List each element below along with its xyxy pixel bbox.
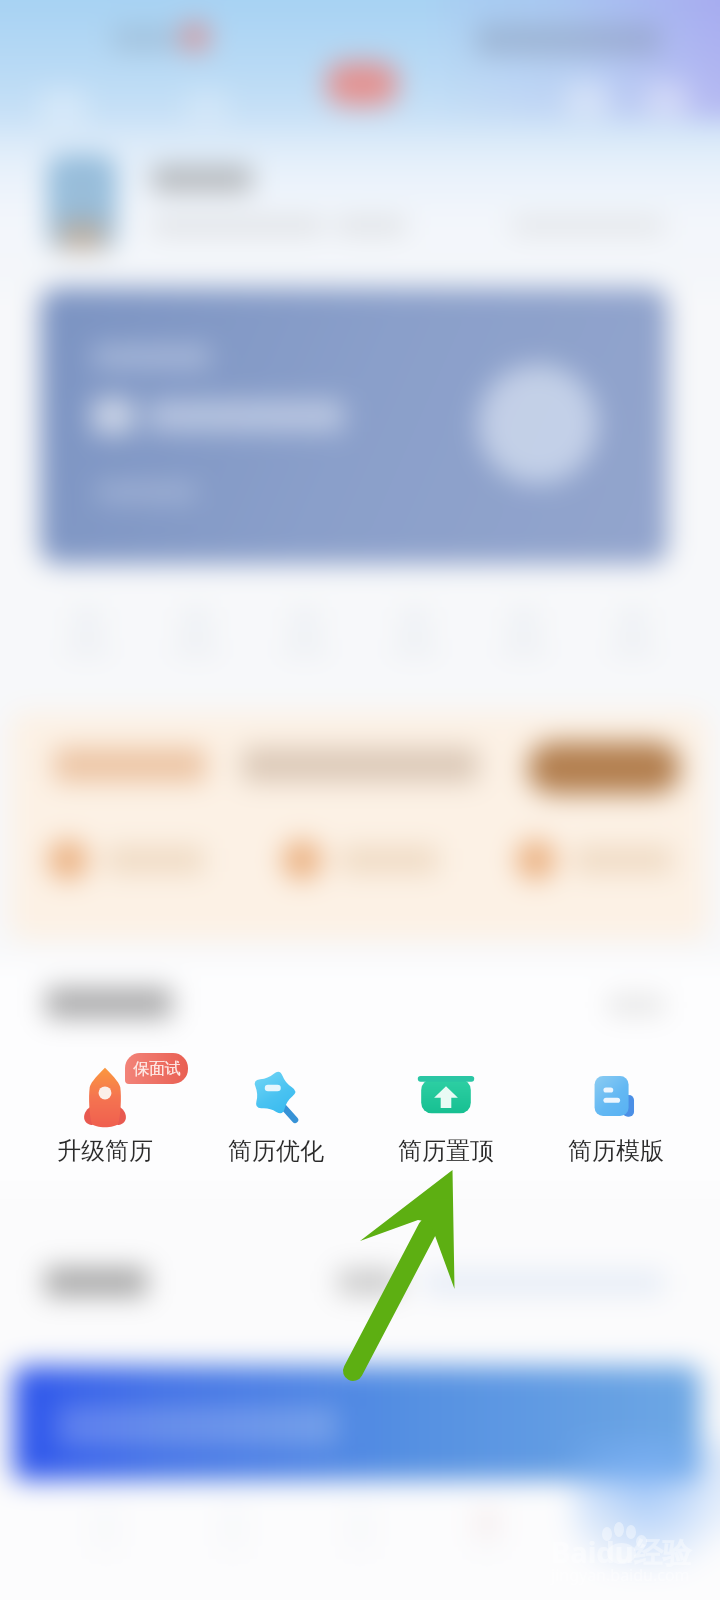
staticText: Baidu经验	[551, 1532, 692, 1572]
button[interactable]: 简历置顶	[361, 1040, 531, 1180]
staticText: 简历模版	[568, 1136, 664, 1166]
button[interactable]: 简历模版	[531, 1040, 701, 1180]
button[interactable]: 保面试	[20, 1040, 190, 1180]
staticText: 保面试	[133, 1059, 181, 1079]
staticText: 简历置顶	[398, 1136, 494, 1166]
other: Pointer arrow	[0, 0, 720, 1600]
staticText: 升级简历	[57, 1136, 153, 1166]
staticText: 简历优化	[228, 1136, 324, 1166]
staticText: jingyan.baidu.com	[551, 1564, 690, 1586]
button[interactable]: 简历优化	[191, 1040, 361, 1180]
